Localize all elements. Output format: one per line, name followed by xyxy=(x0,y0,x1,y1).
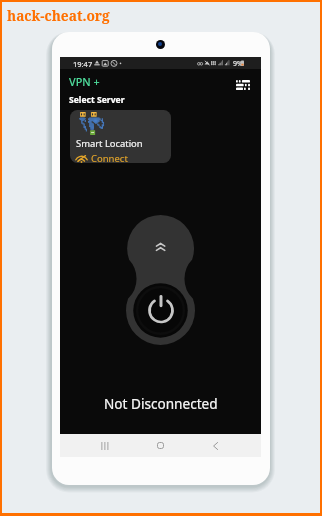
staticText: Select Server xyxy=(69,94,125,106)
button[interactable]: Settings xyxy=(232,74,254,96)
staticText: 19:47 xyxy=(73,59,93,69)
staticText: Smart Location xyxy=(76,137,143,150)
staticText: Not Disconnected xyxy=(104,394,218,413)
button[interactable]: Connect xyxy=(126,215,195,346)
button[interactable]: Home xyxy=(140,434,180,457)
button[interactable]: Back xyxy=(195,434,235,457)
staticText: Connect xyxy=(91,152,128,163)
button[interactable]: Recent apps xyxy=(84,434,124,457)
button[interactable]: Smart Location xyxy=(70,110,171,163)
staticText: VPN + xyxy=(69,74,100,89)
staticText: 9% xyxy=(233,59,243,69)
staticText: hack-cheat.org xyxy=(7,6,110,25)
